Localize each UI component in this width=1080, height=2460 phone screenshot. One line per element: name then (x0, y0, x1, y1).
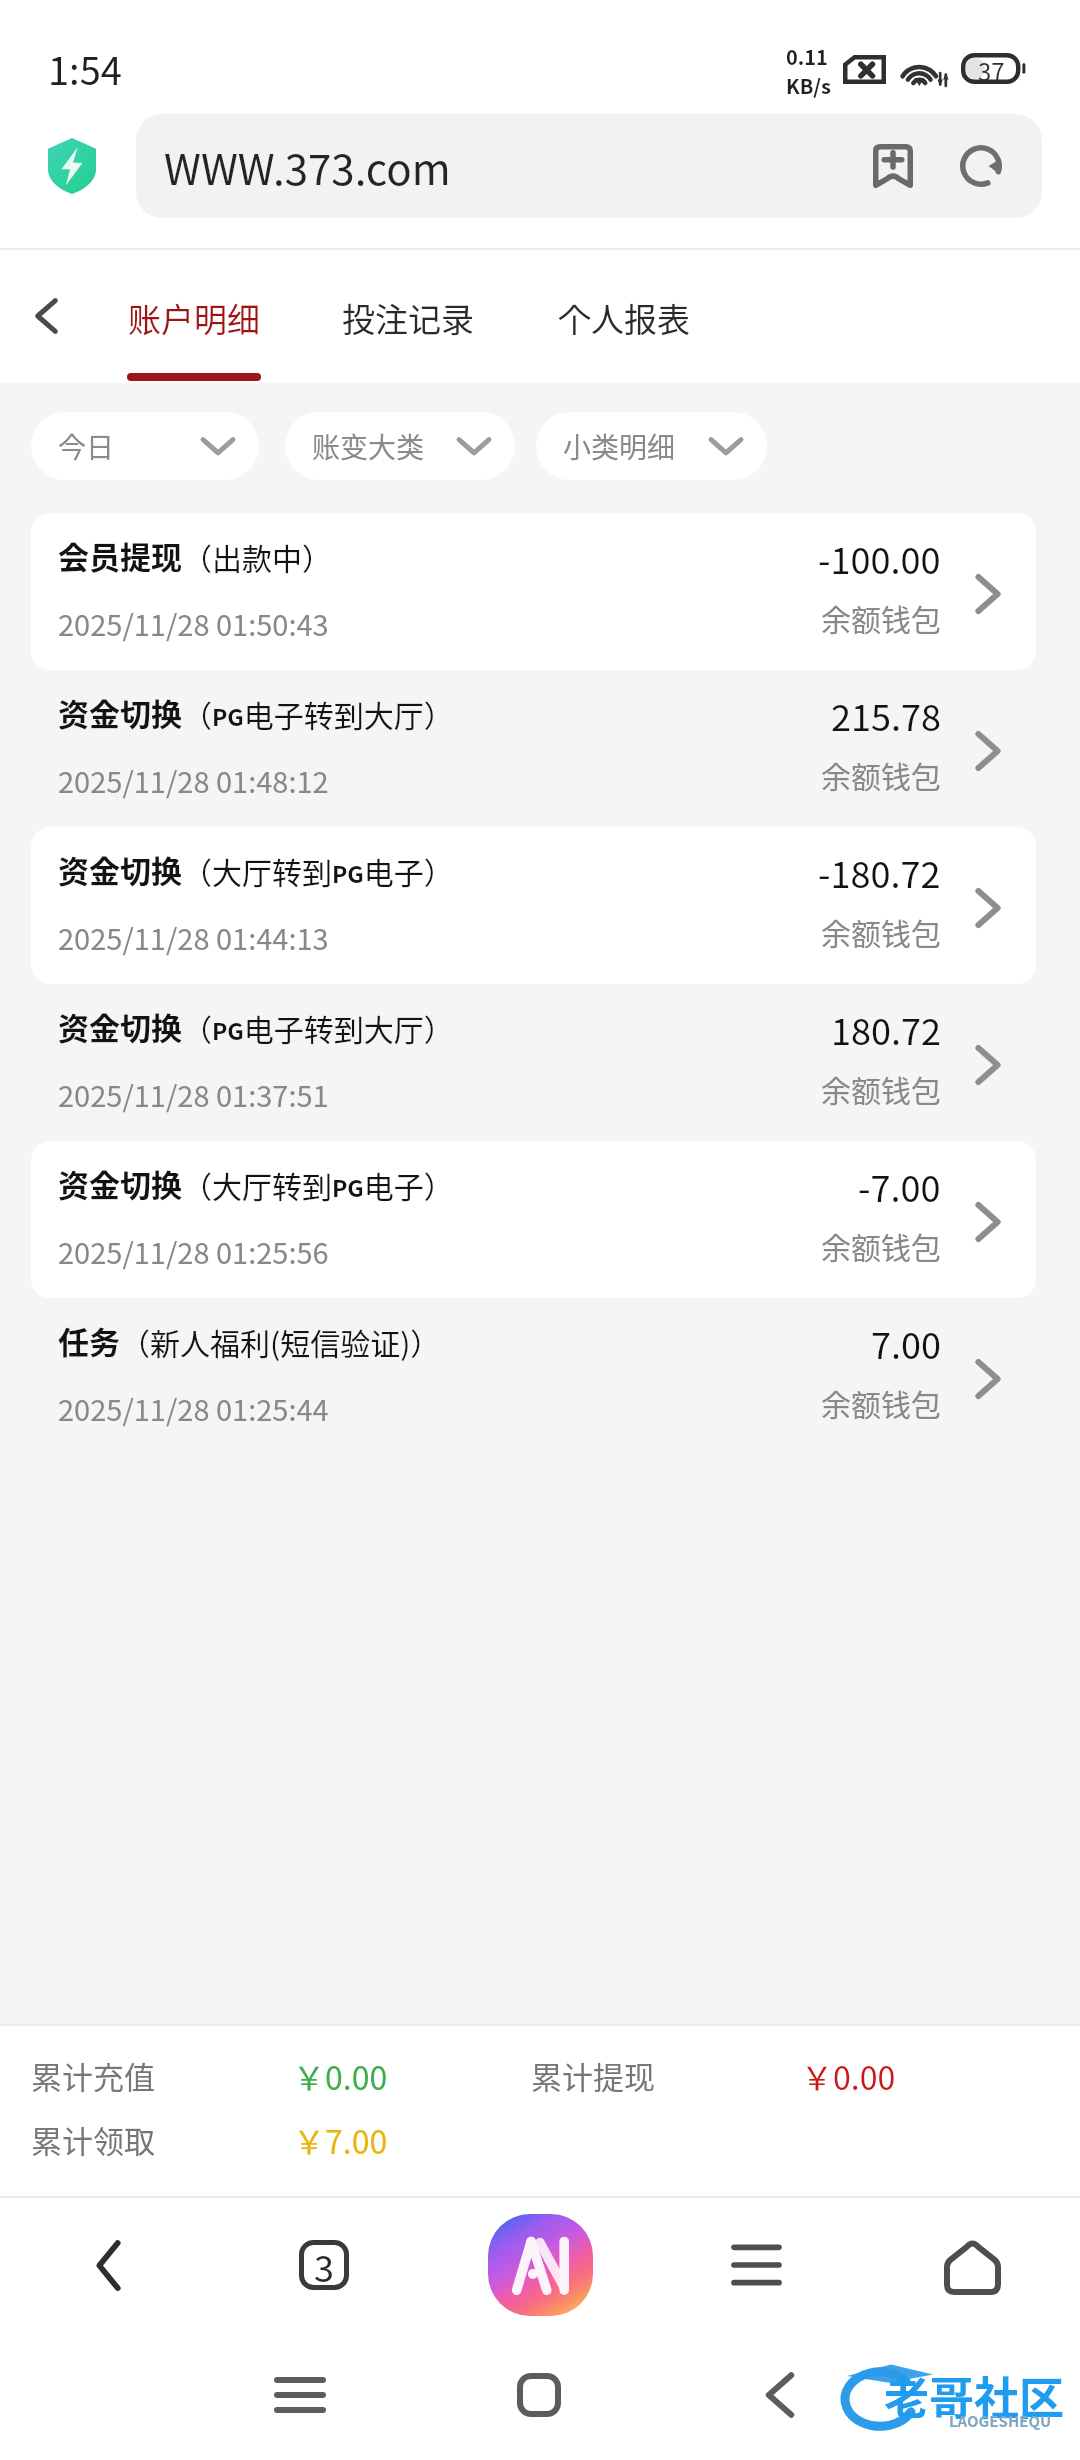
staticText: 资金切换 (58, 847, 182, 892)
button[interactable]: Recent apps (240, 2330, 360, 2460)
staticText: 0.11 (786, 42, 828, 71)
staticText: 余额钱包 (821, 753, 941, 796)
staticText: 余额钱包 (821, 910, 941, 953)
staticText: 余额钱包 (821, 1381, 941, 1424)
staticText: （大厅转到PG电子） (182, 849, 454, 892)
button[interactable]: Add bookmark (856, 129, 930, 203)
button[interactable]: 账变大类 (285, 412, 515, 480)
button[interactable]: 资金切换 (31, 670, 1036, 827)
staticText: 2025/11/28 01:25:56 (58, 1230, 329, 1272)
staticText: 2025/11/28 01:25:44 (58, 1387, 329, 1429)
staticText: 2025/11/28 01:48:12 (58, 759, 329, 801)
staticText: 2025/11/28 01:50:43 (58, 602, 329, 644)
button[interactable]: Open tabs, 3 open (216, 2200, 432, 2330)
staticText: 余额钱包 (821, 1224, 941, 1267)
button[interactable]: 今日 (31, 412, 259, 480)
button[interactable]: AI assistant (432, 2200, 648, 2330)
staticText: （出款中） (182, 535, 332, 578)
staticText: 余额钱包 (821, 1067, 941, 1110)
button[interactable]: Back (0, 249, 92, 382)
staticText: 资金切换 (58, 690, 182, 735)
staticText: （PG电子转到大厅） (182, 692, 454, 735)
staticText: （大厅转到PG电子） (182, 1163, 454, 1206)
staticText: （新人福利(短信验证)） (120, 1320, 441, 1363)
button[interactable]: 资金切换 (31, 827, 1036, 984)
button[interactable]: 个人报表 (557, 250, 691, 383)
button[interactable]: Menu (648, 2200, 864, 2330)
button[interactable]: 小类明细 (536, 412, 767, 480)
staticText: 累计提现 (531, 2053, 655, 2098)
button[interactable]: Back (720, 2330, 840, 2460)
button[interactable]: Home (864, 2200, 1080, 2330)
staticText: -180.72 (818, 846, 941, 898)
staticText: 215.78 (831, 689, 941, 741)
staticText: -100.00 (818, 532, 941, 584)
button[interactable]: Reload page (944, 129, 1018, 203)
staticText: WWW.373.com (164, 136, 856, 197)
button[interactable]: 投注记录 (341, 250, 475, 383)
button[interactable]: Back (0, 2200, 216, 2330)
staticText: 账户明细 (128, 294, 260, 342)
staticText: ￥0.00 (293, 2053, 388, 2099)
staticText: KB/s (786, 71, 831, 100)
staticText: （PG电子转到大厅） (182, 1006, 454, 1049)
staticText: LAOGESHEQU (949, 2410, 1052, 2432)
staticText: 37 (978, 53, 1005, 84)
button[interactable]: 任务 (31, 1298, 1036, 1455)
staticText: 3 (314, 2240, 334, 2290)
staticText: 小类明细 (563, 426, 709, 467)
staticText: -7.00 (858, 1160, 941, 1212)
staticText: 任务 (58, 1318, 120, 1363)
staticText: 余额钱包 (821, 596, 941, 639)
staticText: 账变大类 (312, 426, 457, 467)
staticText: 2025/11/28 01:44:13 (58, 916, 329, 958)
button[interactable]: 资金切换 (31, 984, 1036, 1141)
staticText: 180.72 (831, 1003, 941, 1055)
button[interactable]: 资金切换 (31, 1141, 1036, 1298)
button[interactable]: WWW.373.com (136, 114, 1042, 218)
button[interactable]: 账户明细 (127, 250, 261, 383)
staticText: 资金切换 (58, 1161, 182, 1206)
staticText: 会员提现 (58, 533, 182, 578)
staticText: 2025/11/28 01:37:51 (58, 1073, 329, 1115)
staticText: ￥7.00 (293, 2117, 388, 2163)
staticText: 老哥社区 (884, 2363, 1065, 2428)
staticText: 投注记录 (342, 294, 474, 342)
staticText: 1:54 (48, 41, 122, 96)
button[interactable]: Home (479, 2330, 599, 2460)
staticText: 资金切换 (58, 1004, 182, 1049)
button[interactable]: Site security (40, 134, 104, 198)
staticText: 累计充值 (31, 2053, 155, 2098)
staticText: 个人报表 (558, 294, 690, 342)
staticText: ￥0.00 (801, 2053, 896, 2099)
staticText: 7.00 (871, 1317, 941, 1369)
staticText: 累计领取 (31, 2117, 155, 2162)
button[interactable]: 会员提现 (31, 513, 1036, 670)
staticText: 今日 (58, 426, 201, 467)
